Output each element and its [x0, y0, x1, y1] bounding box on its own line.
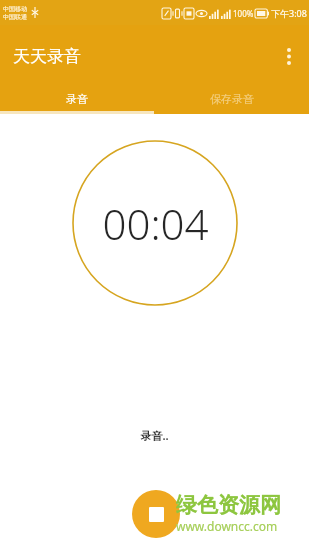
staticText: 天天录音 [13, 46, 81, 67]
staticText: 下午3:08 [271, 7, 307, 19]
staticText: 中国移动 [3, 5, 27, 13]
staticText: 绿色资源网 [176, 492, 281, 518]
button[interactable]: More options [269, 36, 309, 76]
staticText: 00:04 [102, 195, 209, 252]
button[interactable]: 保存录音 [154, 87, 309, 111]
staticText: 100% [233, 8, 254, 19]
button[interactable]: Stop recording [132, 490, 180, 538]
staticText: 录音.. [140, 428, 169, 443]
button[interactable]: 录音 [0, 87, 154, 111]
staticText: 中国联通 [3, 13, 27, 21]
staticText: 保存录音 [210, 92, 254, 106]
staticText: 录音 [66, 92, 88, 106]
staticText: www.downcc.com [176, 518, 278, 534]
